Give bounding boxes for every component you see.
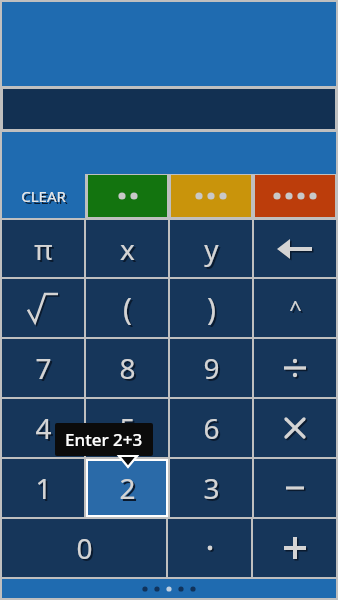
button[interactable]: Two digits — [88, 175, 167, 217]
staticText: CLEAR — [23, 188, 68, 208]
staticText: 0 — [76, 529, 93, 567]
staticText: 1 — [37, 471, 54, 509]
button[interactable]: x — [86, 220, 168, 277]
button[interactable]: y — [170, 220, 252, 277]
staticText: ( — [125, 290, 134, 331]
staticText: x — [120, 230, 135, 268]
button[interactable]: 0 — [2, 519, 166, 577]
staticText: 9 — [205, 351, 222, 389]
button[interactable]: 2 — [86, 459, 168, 517]
staticText: y — [206, 232, 221, 270]
button[interactable]: CLEAR — [2, 174, 85, 218]
staticText: 3 — [203, 469, 220, 507]
staticText: 3 — [205, 471, 222, 509]
staticText: 7 — [35, 349, 52, 387]
button[interactable]: Backspace — [254, 220, 336, 277]
staticText: 1 — [35, 469, 52, 507]
button[interactable]: 1 — [2, 459, 84, 517]
button[interactable]: 9 — [170, 339, 252, 397]
button[interactable]: 8 — [86, 339, 168, 397]
staticText: ^ — [289, 293, 302, 323]
staticText: y — [204, 230, 219, 268]
staticText: ) — [207, 288, 216, 329]
button[interactable]: Three digits — [171, 175, 251, 217]
staticText: 5 — [121, 411, 138, 449]
button[interactable]: Minus — [254, 459, 336, 517]
staticText: 8 — [119, 349, 136, 387]
staticText: 0 — [78, 531, 95, 569]
button[interactable]: Multiply — [254, 399, 336, 457]
staticText: π — [34, 230, 53, 268]
staticText: x — [122, 232, 137, 270]
staticText: 9 — [203, 349, 220, 387]
button[interactable]: ( — [86, 279, 168, 337]
button[interactable]: Divide — [254, 339, 336, 397]
button[interactable]: Square root — [2, 279, 84, 337]
staticText: π — [36, 232, 55, 270]
button[interactable]: 4 — [2, 399, 84, 457]
button[interactable]: π — [2, 220, 84, 277]
staticText: CLEAR — [21, 186, 66, 206]
staticText: Enter 2+3 — [65, 428, 143, 451]
staticText: 4 — [35, 409, 52, 447]
button[interactable]: ) — [170, 279, 252, 337]
staticText: ( — [123, 288, 132, 329]
button[interactable]: 7 — [2, 339, 84, 397]
staticText: ^ — [291, 295, 304, 325]
staticText: 2 — [121, 471, 138, 509]
staticText: 4 — [37, 411, 54, 449]
button[interactable]: Four digits — [255, 175, 335, 217]
button[interactable]: Plus — [253, 519, 336, 577]
button[interactable]: ^ — [254, 279, 336, 337]
button[interactable]: Decimal point — [168, 519, 251, 577]
staticText: ) — [209, 290, 218, 331]
staticText: 6 — [203, 409, 220, 447]
staticText: 8 — [121, 351, 138, 389]
staticText: 6 — [205, 411, 222, 449]
staticText: 2 — [119, 469, 136, 507]
button[interactable]: 6 — [170, 399, 252, 457]
button[interactable]: 5 — [86, 399, 168, 457]
staticText: 5 — [119, 409, 136, 447]
button[interactable]: 3 — [170, 459, 252, 517]
staticText: 7 — [37, 351, 54, 389]
